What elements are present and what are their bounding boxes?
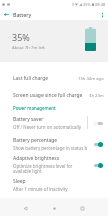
staticText: Battery saver	[13, 116, 44, 123]
staticText: 15h 34m ago	[78, 76, 104, 82]
button[interactable]: Battery percentage	[87, 135, 108, 152]
button[interactable]: Back	[19, 202, 31, 214]
button[interactable]: Screen usage since full charge	[0, 90, 108, 101]
staticText: Screen usage since full charge	[13, 92, 89, 99]
staticText: Sleep	[13, 178, 26, 185]
staticText: 35%	[83, 2, 91, 7]
staticText: After 1 minute of inactivity	[13, 186, 68, 192]
button[interactable]: Navigate up	[0, 9, 13, 20]
staticText: Last full charge	[13, 75, 78, 82]
button[interactable]: Sleep	[0, 176, 108, 193]
staticText: Power management	[13, 105, 56, 111]
staticText: 35%	[12, 31, 30, 43]
staticText: About 7h 7m left	[12, 45, 45, 51]
staticText: Optimize brightness level for available …	[13, 163, 87, 175]
button[interactable]: Adaptive brightness	[0, 154, 87, 176]
button[interactable]: Recent apps	[76, 202, 88, 214]
staticText: Battery	[13, 11, 32, 18]
button[interactable]: Last full charge	[0, 73, 108, 84]
button[interactable]: Battery saver	[88, 114, 108, 131]
staticText: Battery percentage	[13, 137, 58, 144]
button[interactable]: Home	[48, 202, 60, 214]
button[interactable]: More options	[97, 9, 108, 20]
staticText: Off / Never turn on automatically	[13, 124, 82, 130]
staticText: 3h 23m	[89, 93, 104, 99]
staticText: 08:48	[95, 2, 106, 7]
staticText: Show battery percentage in status bar	[13, 145, 87, 151]
button[interactable]: Battery saver	[0, 114, 87, 131]
staticText: Adaptive brightness	[13, 155, 59, 162]
button[interactable]: Adaptive brightness	[87, 154, 108, 176]
button[interactable]: Battery percentage	[0, 135, 87, 152]
